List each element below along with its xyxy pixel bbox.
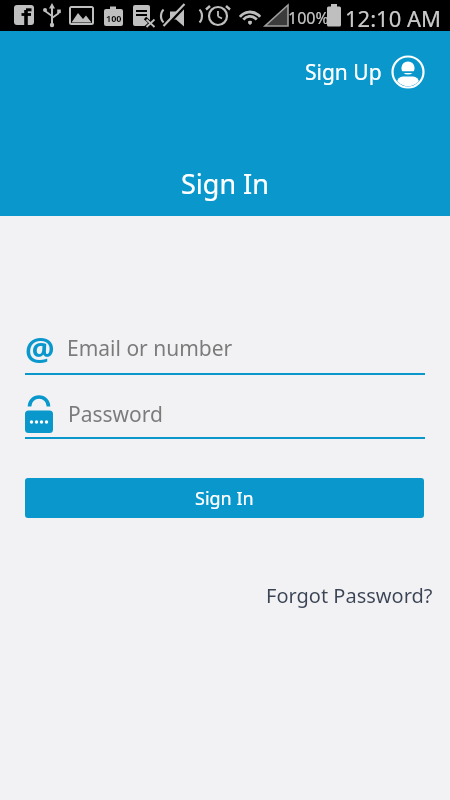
button[interactable]: Password xyxy=(25,392,425,436)
button[interactable]: @ xyxy=(25,325,425,371)
staticText: Sign Up xyxy=(305,58,382,87)
staticText: 100 xyxy=(106,12,122,24)
staticText: 100% xyxy=(288,7,329,29)
staticText: Forgot Password? xyxy=(266,582,433,609)
staticText: Sign In xyxy=(195,486,254,511)
staticText: Password xyxy=(68,400,163,429)
button[interactable]: Sign In xyxy=(25,478,424,518)
staticText: 12:10 AM xyxy=(345,3,441,33)
staticText: Email or number xyxy=(67,334,233,363)
button[interactable]: Sign Up xyxy=(305,55,425,89)
button[interactable]: Forgot Password? xyxy=(266,582,450,609)
staticText: @ xyxy=(25,326,55,371)
staticText: Sign In xyxy=(181,165,269,202)
